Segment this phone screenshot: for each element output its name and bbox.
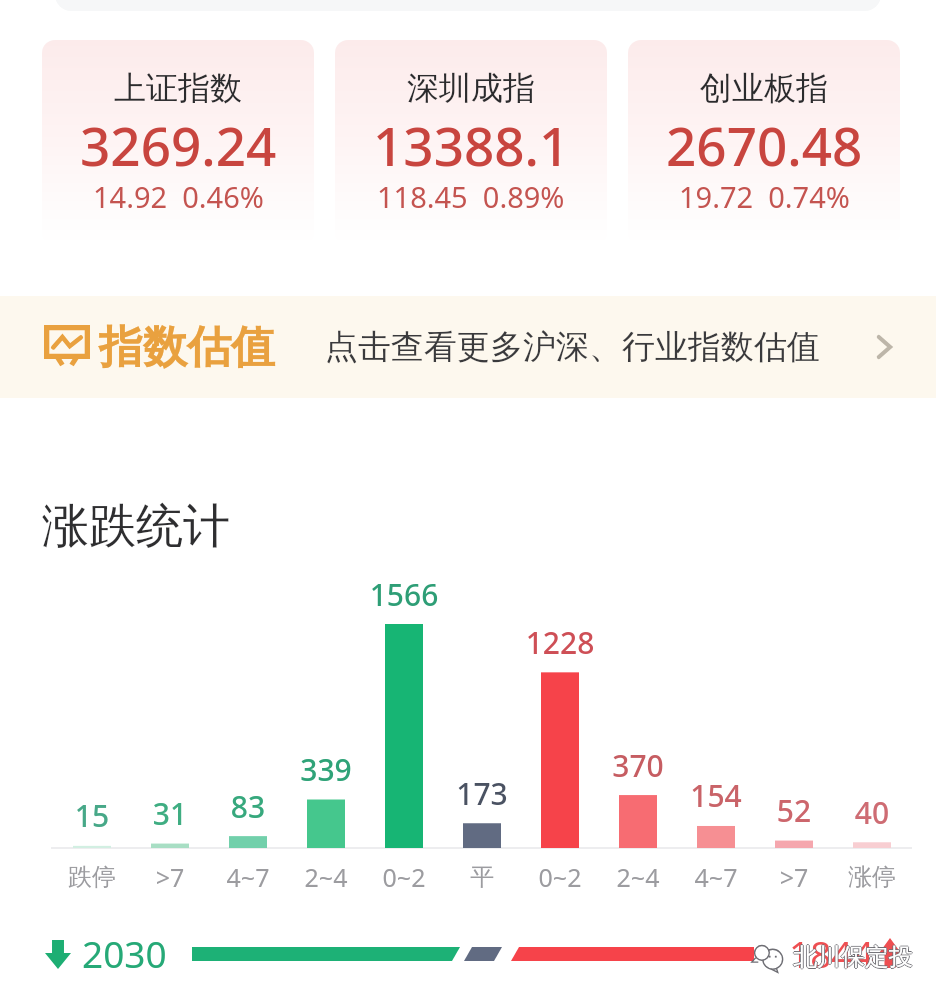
staticText: 154 <box>677 775 755 816</box>
staticText: 涨跌统计 <box>42 497 230 556</box>
staticText: >7 <box>131 860 209 894</box>
staticText: 4~7 <box>677 860 755 894</box>
staticText: 跌停 <box>53 862 131 892</box>
staticText: 北川保定投 <box>794 942 914 972</box>
staticText: 14.92 0.46% <box>93 177 264 216</box>
button[interactable]: 创业板指 <box>628 40 900 245</box>
staticText: 52 <box>755 790 833 831</box>
staticText: 上证指数 <box>114 68 242 108</box>
staticText: 北川保定投 <box>793 942 913 972</box>
staticText: 北川保定投 <box>793 943 913 973</box>
staticText: 31 <box>131 793 209 834</box>
button[interactable]: 深圳成指 <box>335 40 607 245</box>
staticText: 平 <box>443 862 521 892</box>
staticText: 1228 <box>521 622 599 663</box>
staticText: >7 <box>755 860 833 894</box>
staticText: 370 <box>599 745 677 786</box>
staticText: 118.45 0.89% <box>377 177 565 216</box>
button[interactable]: 上证指数 <box>42 40 314 245</box>
button[interactable]: 指数估值 <box>0 296 936 398</box>
staticText: 2~4 <box>599 860 677 894</box>
staticText: 15 <box>53 795 131 836</box>
staticText: 北川保定投 <box>793 941 913 971</box>
staticText: 0~2 <box>521 860 599 894</box>
other: More <box>877 336 892 358</box>
staticText: 3269.24 <box>80 109 277 181</box>
staticText: 2670.48 <box>666 109 863 181</box>
staticText: 0~2 <box>365 860 443 894</box>
other: Declining 2030 <box>45 940 71 969</box>
staticText: 深圳成指 <box>407 68 535 108</box>
staticText: 1844 <box>789 928 874 978</box>
staticText: 83 <box>209 786 287 827</box>
staticText: 19.72 0.74% <box>679 177 850 216</box>
other: Advancing 1844 <box>878 938 902 968</box>
staticText: 北川保定投 <box>792 942 912 972</box>
staticText: 2030 <box>82 928 167 978</box>
staticText: 173 <box>443 773 521 814</box>
staticText: 4~7 <box>209 860 287 894</box>
staticText: 涨停 <box>833 862 911 892</box>
staticText: 2~4 <box>287 860 365 894</box>
staticText: 1566 <box>365 574 443 615</box>
staticText: 创业板指 <box>700 68 828 108</box>
staticText: 40 <box>833 792 911 833</box>
staticText: 339 <box>287 749 365 790</box>
staticText: 13388.1 <box>373 109 570 181</box>
staticText: 指数估值 <box>99 320 275 375</box>
other: 指数估值 <box>44 325 90 365</box>
staticText: 点击查看更多沪深、行业指数估值 <box>325 326 820 368</box>
